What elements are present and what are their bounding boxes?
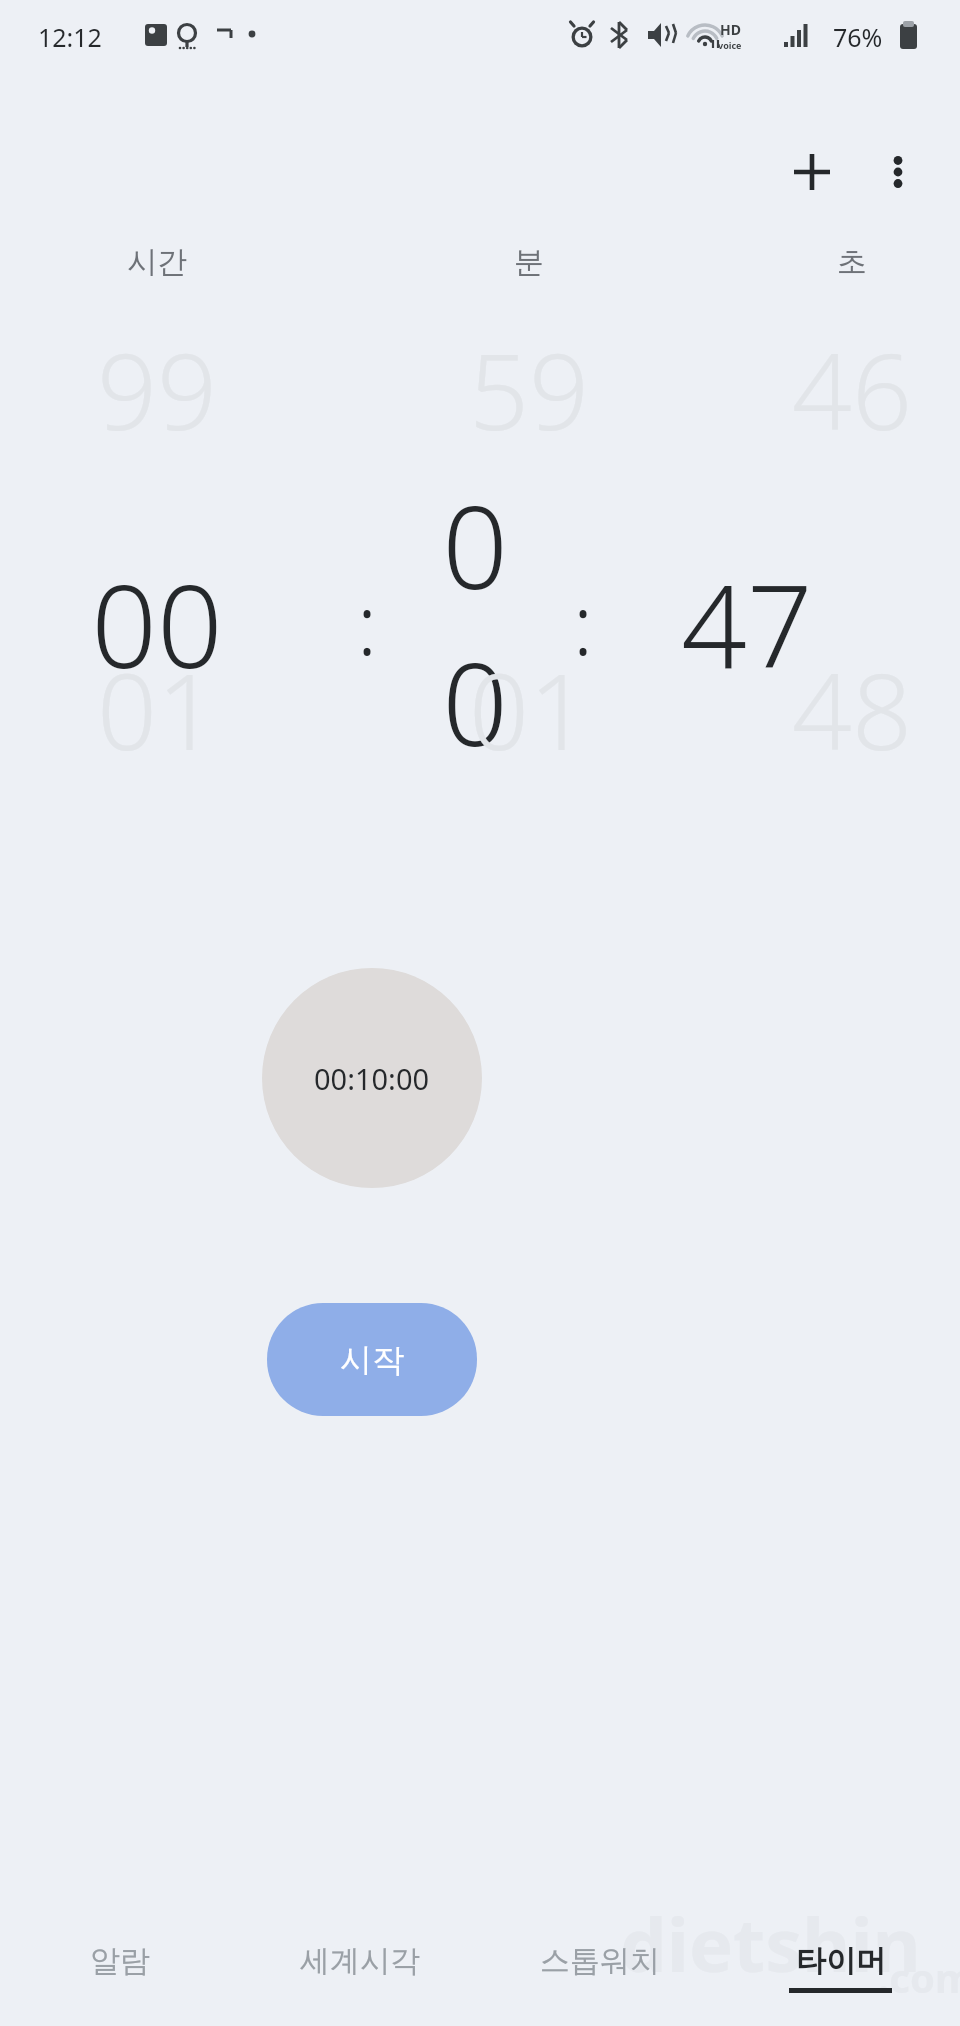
button[interactable]: 세계시각 xyxy=(240,1908,480,2026)
button[interactable]: Add timer preset xyxy=(768,128,856,216)
staticText: .com xyxy=(878,1950,960,2004)
staticText: voice xyxy=(718,39,742,51)
staticText: 분 xyxy=(514,243,544,281)
staticText: 스톱워치 xyxy=(540,1942,660,1980)
staticText: : xyxy=(357,567,378,679)
staticText: 00 xyxy=(91,545,223,702)
staticText: 타이머 xyxy=(796,1942,886,1980)
staticText: 01 xyxy=(469,638,589,781)
staticText: 48 xyxy=(792,638,912,781)
staticText: 00:10:00 xyxy=(314,1059,430,1098)
staticText: 46 xyxy=(792,318,912,461)
staticText: : xyxy=(573,567,594,679)
staticText: 초 xyxy=(837,243,867,281)
button[interactable]: More options xyxy=(856,130,940,214)
staticText: HD xyxy=(720,20,741,39)
button[interactable]: 타이머 xyxy=(720,1908,960,2026)
staticText: 00 xyxy=(421,466,529,780)
button[interactable]: 스톱워치 xyxy=(480,1908,720,2026)
button[interactable]: 시작 xyxy=(267,1303,477,1416)
staticText: 01 xyxy=(97,638,217,781)
staticText: 시작 xyxy=(340,1340,404,1380)
staticText: 12:12 xyxy=(38,20,102,54)
staticText: 세계시각 xyxy=(300,1942,420,1980)
button[interactable]: 00:10:00 xyxy=(262,968,482,1188)
staticText: 76% xyxy=(833,20,883,54)
button[interactable]: 알람 xyxy=(0,1908,240,2026)
staticText: 59 xyxy=(469,318,589,461)
staticText: 알람 xyxy=(90,1942,150,1980)
staticText: 47 xyxy=(681,545,813,702)
staticText: 99 xyxy=(97,318,217,461)
staticText: dietshin xyxy=(620,1893,921,1994)
staticText: 시간 xyxy=(127,243,187,281)
